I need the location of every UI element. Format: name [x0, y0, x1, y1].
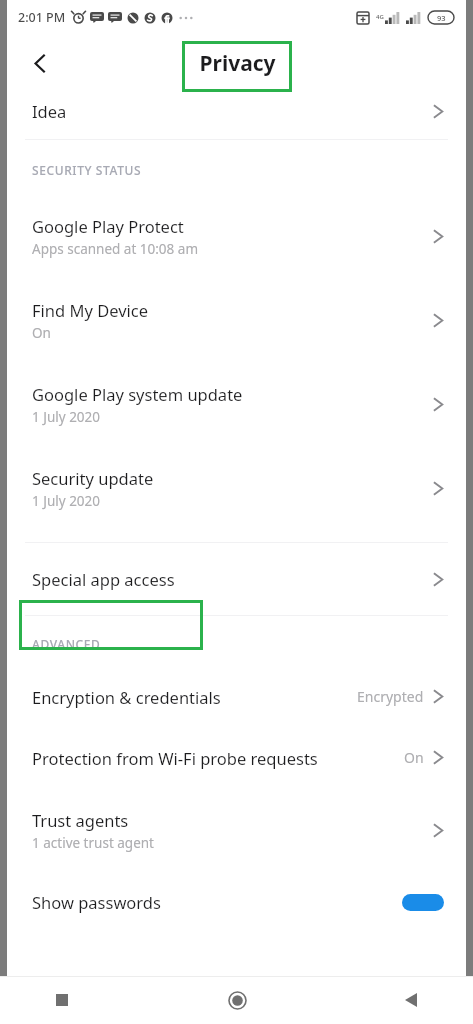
staticText: SECURITY STATUS: [32, 162, 142, 178]
staticText: Trust agents: [32, 809, 129, 831]
button[interactable]: Show passwords: [7, 872, 466, 932]
button[interactable]: Back: [389, 978, 433, 1022]
staticText: ADVANCED: [32, 636, 101, 652]
staticText: On: [32, 324, 51, 342]
staticText: 93: [437, 13, 446, 23]
staticText: 1 July 2020: [32, 408, 101, 426]
staticText: 1 active trust agent: [32, 834, 154, 852]
staticText: Security update: [32, 467, 154, 489]
staticText: Privacy: [199, 49, 276, 78]
staticText: Google Play Protect: [32, 215, 184, 237]
staticText: On: [404, 748, 424, 767]
staticText: Encrypted: [357, 687, 424, 706]
button[interactable]: Trust agents: [7, 788, 466, 872]
staticText: Encryption & credentials: [32, 686, 357, 708]
staticText: Google Play system update: [32, 383, 243, 405]
button[interactable]: Recents: [40, 978, 84, 1022]
staticText: Special app access: [32, 568, 433, 590]
staticText: 4G: [376, 13, 384, 21]
button[interactable]: Security update: [7, 446, 466, 530]
button[interactable]: Google Play system update: [7, 362, 466, 446]
staticText: Protection from Wi-Fi probe requests: [32, 747, 404, 769]
staticText: Apps scanned at 10:08 am: [32, 240, 199, 258]
button[interactable]: Special app access: [7, 554, 466, 604]
staticText: 1 July 2020: [32, 492, 101, 510]
staticText: Show passwords: [32, 891, 402, 913]
staticText: 2:01 PM: [18, 9, 66, 26]
button[interactable]: Encryption & credentials: [7, 666, 466, 727]
button[interactable]: Protection from Wi-Fi probe requests: [7, 727, 466, 788]
staticText: Idea: [32, 100, 433, 122]
button[interactable]: Back: [19, 42, 61, 84]
button[interactable]: Home: [215, 978, 259, 1022]
button[interactable]: Find My Device: [7, 278, 466, 362]
button[interactable]: Idea: [7, 92, 466, 130]
button[interactable]: Google Play Protect: [7, 194, 466, 278]
staticText: Find My Device: [32, 299, 149, 321]
